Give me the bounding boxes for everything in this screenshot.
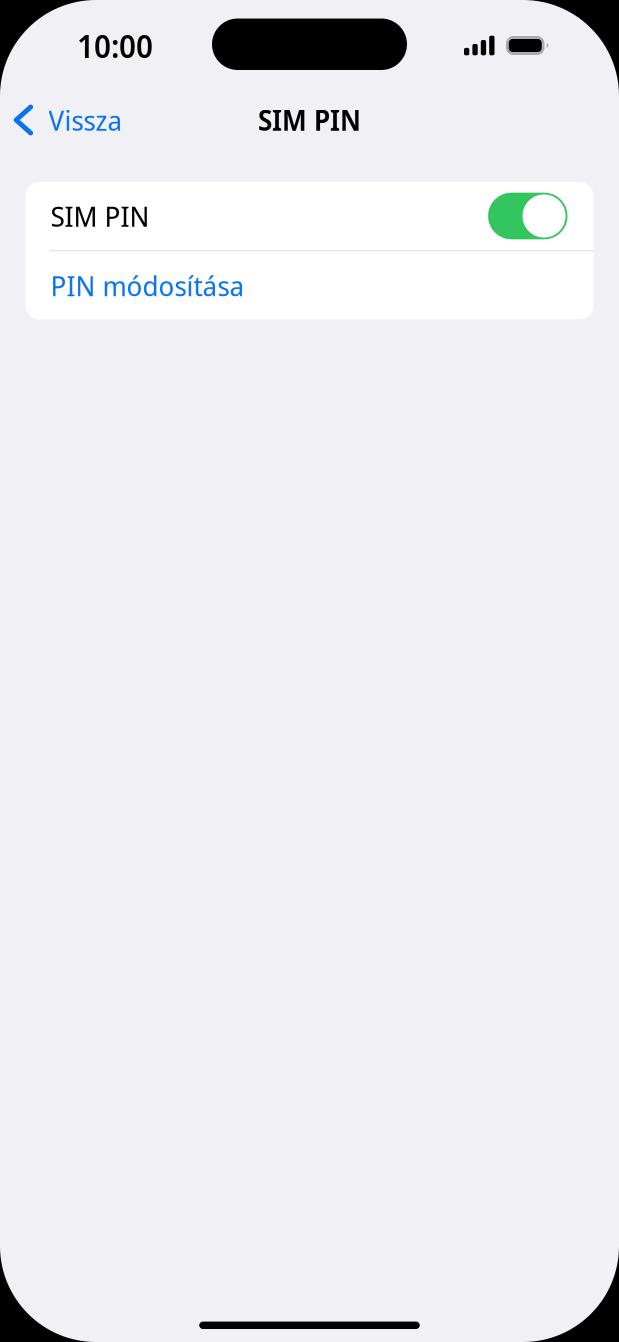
button[interactable]: Vissza (0, 96, 136, 144)
staticText: SIM PIN (258, 101, 361, 139)
staticText: SIM PIN (50, 197, 149, 235)
staticText: Vissza (48, 101, 122, 139)
staticText: 10:00 (77, 24, 153, 67)
staticText: PIN módosítása (50, 266, 244, 304)
button[interactable]: PIN módosítása (25, 251, 593, 319)
button[interactable]: SIM PIN (488, 193, 567, 239)
